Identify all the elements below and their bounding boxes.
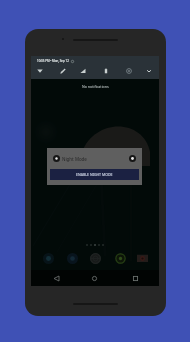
button[interactable]: Back xyxy=(49,270,63,286)
button[interactable]: Flashlight xyxy=(56,64,69,77)
button[interactable]: Recents xyxy=(128,270,142,286)
button[interactable]: Messaging xyxy=(65,251,80,266)
button[interactable]: Browser xyxy=(88,251,103,266)
button[interactable]: Mobile data xyxy=(76,64,89,77)
staticText: No notifications xyxy=(82,84,109,89)
button[interactable]: Camera xyxy=(135,251,150,266)
button[interactable]: Home xyxy=(87,270,101,286)
staticText: Night Mode xyxy=(62,156,87,162)
button[interactable]: Phone xyxy=(41,251,56,266)
staticText: 10:05 PM • Mon, Sep 12 xyxy=(37,59,69,63)
button[interactable]: ENABLE NIGHT MODE xyxy=(50,169,139,180)
button[interactable]: WhatsApp xyxy=(113,251,128,266)
button[interactable]: Battery xyxy=(99,64,112,77)
button[interactable]: Auto rotate xyxy=(122,64,135,77)
staticText: ENABLE NIGHT MODE xyxy=(76,172,113,177)
button[interactable]: Expand xyxy=(142,64,155,77)
button[interactable]: Wi-Fi xyxy=(33,64,46,77)
